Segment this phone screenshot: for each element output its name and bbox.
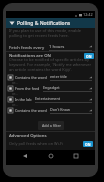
button[interactable]: Contains the word xyxy=(6,106,95,114)
staticText: Choose to be notified of specific articl… xyxy=(9,57,92,72)
staticText: Don't Know xyxy=(50,107,88,112)
button[interactable]: ON xyxy=(84,53,94,59)
button[interactable]: ON xyxy=(83,141,93,147)
button[interactable]: Contains the word xyxy=(6,73,95,81)
staticText: or... xyxy=(12,91,18,96)
button[interactable]: Only poll feeds when on Wi-Fi xyxy=(6,139,95,148)
staticText: Only poll feeds when on Wi-Fi xyxy=(9,141,83,146)
staticText: Add a filter xyxy=(42,123,61,128)
staticText: Contains the word xyxy=(15,75,47,80)
button[interactable]: In the lab xyxy=(6,95,95,103)
staticText: Contains the word xyxy=(15,108,47,113)
button[interactable]: Home xyxy=(45,150,57,162)
staticText: 12:42 xyxy=(83,12,93,17)
staticText: Polling & Notifications xyxy=(17,20,71,27)
staticText: Notifications are ON xyxy=(9,52,51,58)
staticText: If you plan to use of this mode, enable … xyxy=(9,28,92,38)
button[interactable]: Back xyxy=(19,150,31,162)
staticText: ON xyxy=(86,54,92,59)
staticText: Fetch feeds every xyxy=(9,44,45,50)
button[interactable]: Recent apps xyxy=(70,150,82,162)
staticText: Engadget xyxy=(43,85,88,90)
staticText: 1 hours xyxy=(49,43,88,49)
staticText: Entertainment xyxy=(35,96,88,101)
staticText: Advanced Options xyxy=(9,132,47,138)
other: App icon xyxy=(9,20,15,26)
button[interactable]: Add a filter xyxy=(38,121,64,130)
staticText: or... xyxy=(12,80,18,85)
staticText: ON xyxy=(85,142,91,147)
staticText: enter title xyxy=(50,74,88,79)
staticText: From the feed xyxy=(15,86,40,91)
staticText: In the lab xyxy=(15,97,32,102)
staticText: or... xyxy=(12,102,18,107)
button[interactable]: Fetch feeds every xyxy=(6,42,95,51)
button[interactable]: From the feed xyxy=(6,84,95,92)
